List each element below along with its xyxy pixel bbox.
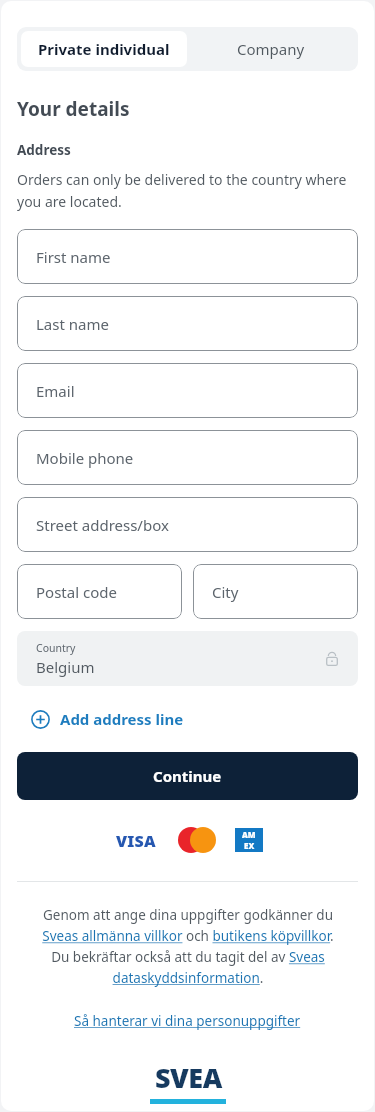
staticText: Orders can only be delivered to the coun… [17,170,352,211]
button[interactable]: Så hanterar vi dina personuppgifter [66,1009,309,1033]
button[interactable]: Mobile phone [17,430,358,485]
button[interactable]: Country [17,631,358,686]
staticText: City [212,582,239,602]
staticText: Genom att ange dina uppgifter godkänner … [42,906,334,987]
staticText: Company [237,39,305,59]
button[interactable]: Continue [17,752,358,800]
staticText: Private individual [38,39,170,59]
staticText: Your details [17,96,130,122]
staticText: AM [242,829,256,840]
button[interactable]: Add address line [17,703,198,735]
button[interactable]: Genom att ange dina uppgifter godkänner … [1,906,374,987]
button[interactable]: Postal code [17,564,182,619]
staticText: First name [36,247,111,267]
staticText: Mobile phone [36,448,134,468]
staticText: Address [17,141,71,159]
button[interactable]: Private individual [21,31,187,67]
button[interactable]: Company [187,31,354,67]
staticText: Så hanterar vi dina personuppgifter [74,1012,301,1030]
staticText: Continue [153,766,222,786]
staticText: Email [36,381,75,401]
staticText: EX [244,840,255,851]
staticText: Last name [36,314,109,334]
button[interactable]: Street address/box [17,497,358,552]
button[interactable]: Last name [17,296,358,351]
button[interactable]: City [193,564,358,619]
staticText: Street address/box [36,515,169,535]
staticText: Belgium [36,657,95,677]
staticText: Postal code [36,582,117,602]
staticText: Add address line [60,709,184,729]
staticText: Country [36,641,76,655]
other: Locked field [324,651,340,667]
staticText: SVEA [155,1059,222,1096]
button[interactable]: First name [17,229,358,284]
button[interactable]: Email [17,363,358,418]
staticText: VISA [116,830,156,850]
